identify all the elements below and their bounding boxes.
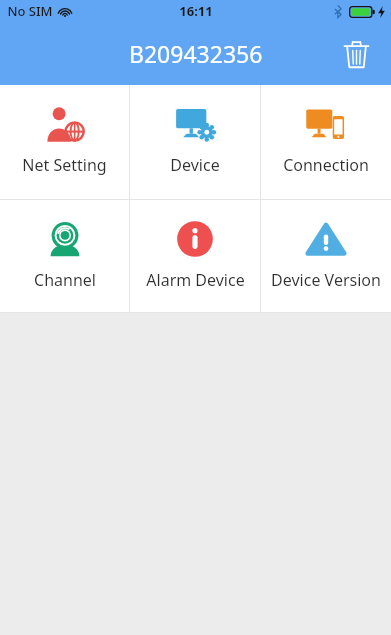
- staticText: B209432356: [129, 38, 263, 69]
- staticText: Connection Mode: [261, 154, 391, 176]
- staticText: 16:11: [179, 2, 213, 20]
- button[interactable]: Delete device: [333, 31, 379, 77]
- button[interactable]: Channel: [0, 200, 129, 312]
- button[interactable]: Connection Mode: [261, 85, 391, 199]
- staticText: Alarm Device: [146, 269, 245, 291]
- button[interactable]: Device Version: [261, 200, 391, 312]
- button[interactable]: Alarm Device: [130, 200, 260, 312]
- button[interactable]: Net Setting: [0, 85, 129, 199]
- staticText: Device: [170, 154, 220, 176]
- staticText: No SIM: [7, 2, 53, 20]
- staticText: Device Version: [271, 269, 381, 291]
- staticText: Channel: [34, 269, 96, 291]
- button[interactable]: Device: [130, 85, 260, 199]
- staticText: Net Setting: [22, 154, 107, 176]
